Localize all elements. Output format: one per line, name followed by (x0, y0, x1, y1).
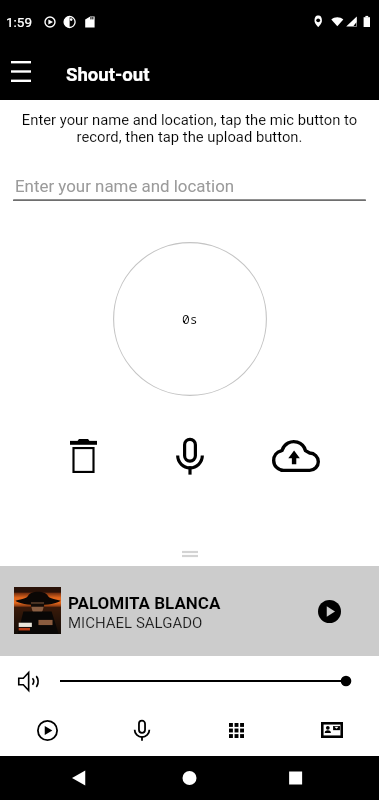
staticText: 0s (182, 310, 198, 328)
button[interactable]: Play (0, 704, 94, 756)
staticText: Enter your name and location (15, 176, 235, 196)
button[interactable]: Enter your name and location (13, 172, 366, 202)
button[interactable]: Upload (272, 432, 320, 480)
button[interactable]: Contacts (284, 704, 379, 756)
button[interactable]: Delete recording (59, 432, 107, 480)
button[interactable]: Open navigation menu (3, 53, 39, 89)
button[interactable]: Apps (189, 704, 284, 756)
staticText: 1:59 (6, 14, 33, 30)
button[interactable]: Volume (8, 662, 46, 700)
staticText: MICHAEL SALGADO (68, 614, 203, 632)
staticText: PALOMITA BLANCA (68, 593, 221, 613)
staticText: Shout-out (66, 64, 150, 86)
button[interactable]: Record (94, 704, 189, 756)
button[interactable]: PALOMITA BLANCA (0, 566, 379, 656)
button[interactable]: Recording timer (113, 242, 267, 396)
button[interactable] (55, 671, 357, 691)
button[interactable]: Play (307, 589, 351, 633)
button[interactable]: Record (166, 432, 214, 480)
staticText: Enter your name and location, tap the mi… (18, 111, 361, 146)
